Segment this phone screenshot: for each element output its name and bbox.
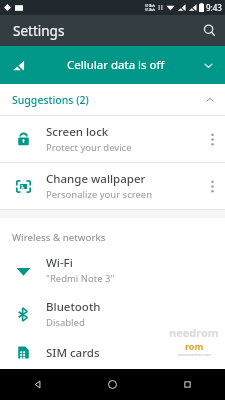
staticText: Protect your device xyxy=(46,141,132,154)
staticText: 514b/s xyxy=(145,8,156,12)
staticText: needrom xyxy=(169,325,219,340)
button[interactable]: Search xyxy=(194,15,225,46)
staticText: Suggestions (2) xyxy=(12,93,89,107)
staticText: 9:43 xyxy=(206,2,222,13)
staticText: 510b/s xyxy=(145,4,156,8)
button[interactable]: Bluetooth xyxy=(0,292,225,336)
staticText: SIM cards xyxy=(46,345,100,361)
staticText: rom xyxy=(185,340,204,352)
button[interactable]: More options xyxy=(199,163,225,209)
button[interactable]: Expand xyxy=(191,48,225,82)
button[interactable]: More options xyxy=(199,116,225,162)
button[interactable]: Change wallpaper xyxy=(0,163,225,209)
button[interactable]: Suggestions (2) xyxy=(0,84,225,115)
button[interactable]: Home xyxy=(75,369,150,400)
staticText: Cellular data is off xyxy=(67,57,165,73)
staticText: Wi-Fi xyxy=(46,255,73,271)
button[interactable]: Recents xyxy=(150,369,225,400)
staticText: Personalize your screen xyxy=(46,188,153,201)
staticText: Change wallpaper xyxy=(46,171,146,187)
staticText: www.needrom.com xyxy=(178,352,211,357)
button[interactable]: Screen lock xyxy=(0,116,225,162)
staticText: Screen lock xyxy=(46,124,109,140)
button[interactable]: Back xyxy=(0,369,75,400)
staticText: Wireless & networks xyxy=(12,231,106,244)
button[interactable]: Cellular data is off xyxy=(0,46,225,84)
staticText: "Redmi Note 3" xyxy=(46,272,115,285)
staticText: Disabled xyxy=(46,316,85,329)
button[interactable]: SIM cards xyxy=(0,336,225,369)
staticText: Settings xyxy=(13,22,65,40)
button[interactable]: Collapse suggestions xyxy=(195,85,225,115)
staticText: Bluetooth xyxy=(46,299,101,315)
button[interactable]: Wi-Fi xyxy=(0,248,225,292)
